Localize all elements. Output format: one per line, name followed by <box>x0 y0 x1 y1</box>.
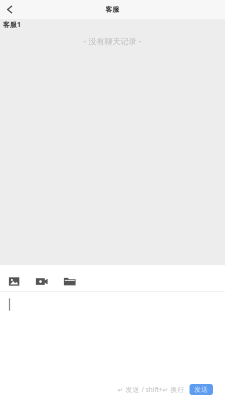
staticText: - 没有聊天记录 - <box>83 36 141 46</box>
button[interactable]: 发送 <box>189 384 213 395</box>
staticText: 客服 <box>105 5 119 14</box>
staticText: 客服1 <box>3 20 21 29</box>
button[interactable]: Send video <box>36 272 64 291</box>
button[interactable]: Send file <box>64 272 88 291</box>
button[interactable]: Send image <box>9 272 36 291</box>
staticText: ↵ 发送 / shift+↵ 换行 <box>117 385 184 394</box>
staticText: 发送 <box>194 385 208 394</box>
button[interactable]: Back <box>0 0 20 19</box>
